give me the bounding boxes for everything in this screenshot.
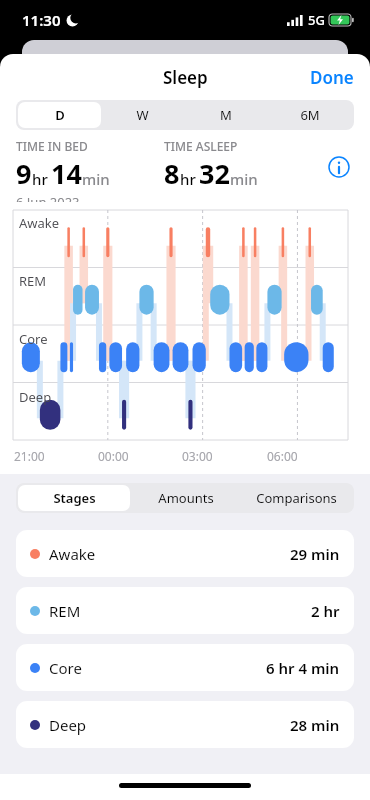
staticText: 06:00 [267,448,298,464]
staticText: Stages [53,489,96,507]
button[interactable]: Comparisons [241,485,352,511]
staticText: 11:30 [22,10,61,30]
staticText: 8 [164,155,180,192]
staticText: Deep [19,388,52,406]
staticText: TIME ASLEEP [164,138,238,154]
staticText: 6M [300,106,320,124]
button[interactable]: Stages [18,485,130,511]
staticText: 14 [51,155,82,192]
staticText: min [82,169,110,189]
button[interactable]: M [184,102,268,128]
staticText: 5G [308,11,325,29]
button[interactable]: W [101,102,184,128]
staticText: 03:00 [182,448,213,464]
staticText: D [55,106,65,124]
staticText: 6 Jun 2023 [16,193,80,202]
staticText: 6 hr 4 min [266,658,340,678]
button[interactable]: Amounts [130,485,241,511]
staticText: 32 [199,155,230,192]
staticText: Comparisons [256,489,337,507]
button[interactable]: Deep [16,701,354,748]
button[interactable]: Core [16,644,354,691]
button[interactable]: Done [294,58,370,97]
staticText: M [220,106,232,124]
staticText: Awake [49,544,96,564]
staticText: Amounts [158,489,214,507]
button[interactable]: D [18,102,101,128]
button[interactable]: Awake [16,530,354,577]
staticText: Deep [49,715,87,735]
staticText: Awake [19,214,60,232]
staticText: min [230,169,258,189]
staticText: TIME IN BED [16,138,88,154]
button[interactable]: REM [16,587,354,634]
staticText: Sleep [163,66,208,89]
staticText: 29 min [290,544,340,564]
staticText: 9 [16,155,32,192]
staticText: hr [32,169,48,189]
staticText: 00:00 [98,448,129,464]
staticText: 2 hr [311,601,340,621]
button[interactable]: Information about sleep stages [324,152,354,182]
staticText: Done [310,66,354,89]
staticText: Core [19,330,48,348]
staticText: W [136,106,149,124]
staticText: 28 min [290,715,340,735]
staticText: Core [49,658,82,678]
staticText: REM [19,272,47,290]
staticText: 21:00 [14,448,45,464]
staticText: hr [180,169,196,189]
button[interactable]: 6M [268,102,352,128]
staticText: REM [49,601,81,621]
